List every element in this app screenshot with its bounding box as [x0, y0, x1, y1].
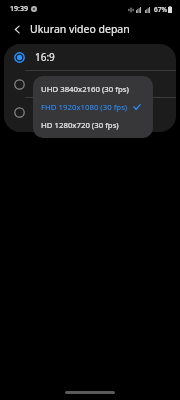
- button[interactable]: Back: [8, 20, 26, 38]
- staticText: FHD 1920x1080 (30 fps): [41, 102, 128, 113]
- staticText: 19:39: [10, 4, 28, 14]
- button[interactable]: UHD 3840x2160 (30 fps): [33, 80, 153, 98]
- button[interactable]: 1:1: [4, 98, 176, 126]
- button[interactable]: FHD 1920x1080 (30 fps): [33, 98, 153, 116]
- button[interactable]: 16:9: [4, 44, 176, 70]
- staticText: UHD 3840x2160 (30 fps): [41, 84, 129, 95]
- button[interactable]: HD 1280x720 (30 fps): [33, 116, 153, 134]
- staticText: 1440x1440 (30 fps): [35, 115, 102, 125]
- staticText: 16:9: [35, 50, 55, 64]
- staticText: HD 1280x720 (30 fps): [41, 120, 119, 131]
- button[interactable]: [4, 71, 176, 97]
- staticText: 1:1: [35, 100, 50, 114]
- staticText: 67%: [154, 5, 167, 14]
- staticText: Ukuran video depan: [30, 22, 130, 36]
